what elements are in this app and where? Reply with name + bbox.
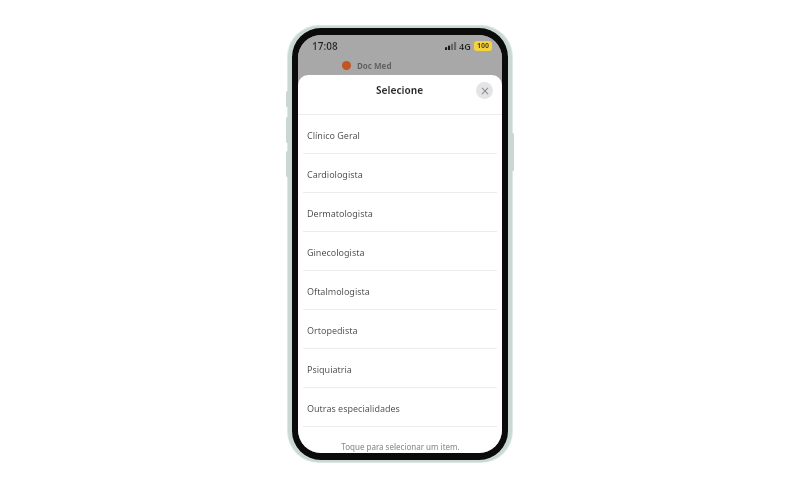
staticText: Clínico Geral — [307, 129, 360, 141]
staticText: Selecione — [376, 83, 424, 97]
button[interactable]: Outras especialidades — [298, 388, 502, 427]
staticText: Cardiologista — [307, 168, 363, 180]
button[interactable]: Clínico Geral — [298, 115, 502, 154]
button[interactable]: Oftalmologista — [298, 271, 502, 310]
staticText: Dermatologista — [307, 207, 373, 219]
button[interactable]: Psiquiatria — [298, 349, 502, 388]
staticText: Psiquiatria — [307, 363, 352, 375]
staticText: 4G — [459, 40, 471, 52]
button[interactable]: Dermatologista — [298, 193, 502, 232]
staticText: Doc Med — [357, 60, 392, 71]
button[interactable]: Ortopedista — [298, 310, 502, 349]
staticText: Oftalmologista — [307, 285, 370, 297]
staticText: Outras especialidades — [307, 402, 400, 414]
staticText: 100 — [477, 41, 490, 51]
button[interactable]: Ginecologista — [298, 232, 502, 271]
staticText: Ginecologista — [307, 246, 365, 258]
staticText: Ortopedista — [307, 324, 358, 336]
staticText: Toque para selecionar um item. — [341, 441, 460, 452]
button[interactable]: Fechar — [476, 82, 493, 99]
button[interactable]: Cardiologista — [298, 154, 502, 193]
staticText: 17:08 — [312, 39, 338, 53]
